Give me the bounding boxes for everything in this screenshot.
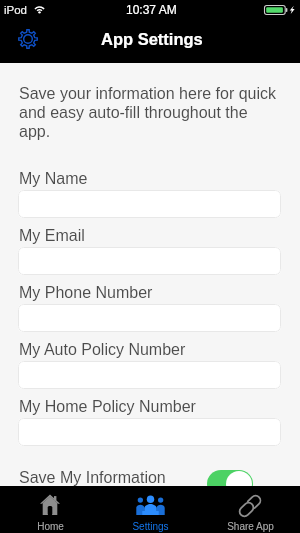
- staticText: Home: [37, 521, 64, 532]
- staticText: My Auto Policy Number: [19, 341, 186, 359]
- button[interactable]: Save My Information: [207, 470, 253, 498]
- staticText: Settings: [132, 521, 169, 532]
- button[interactable]: [18, 304, 281, 332]
- button[interactable]: Share App: [200, 486, 300, 533]
- staticText: Save your information here for quick and…: [19, 85, 283, 141]
- staticText: 10:37 AM: [126, 3, 177, 16]
- staticText: Save My Information: [19, 469, 166, 487]
- staticText: Share App: [227, 521, 274, 532]
- button[interactable]: Settings: [100, 486, 200, 533]
- button[interactable]: Settings: [12, 22, 44, 54]
- staticText: My Email: [19, 227, 85, 245]
- staticText: iPod: [4, 4, 28, 17]
- button[interactable]: Home: [0, 486, 100, 533]
- staticText: My Home Policy Number: [19, 398, 196, 416]
- staticText: My Name: [19, 170, 88, 188]
- staticText: App Settings: [101, 30, 203, 48]
- button[interactable]: [18, 418, 281, 446]
- staticText: My Phone Number: [19, 284, 153, 302]
- button[interactable]: [18, 247, 281, 275]
- button[interactable]: [18, 361, 281, 389]
- button[interactable]: [18, 190, 281, 218]
